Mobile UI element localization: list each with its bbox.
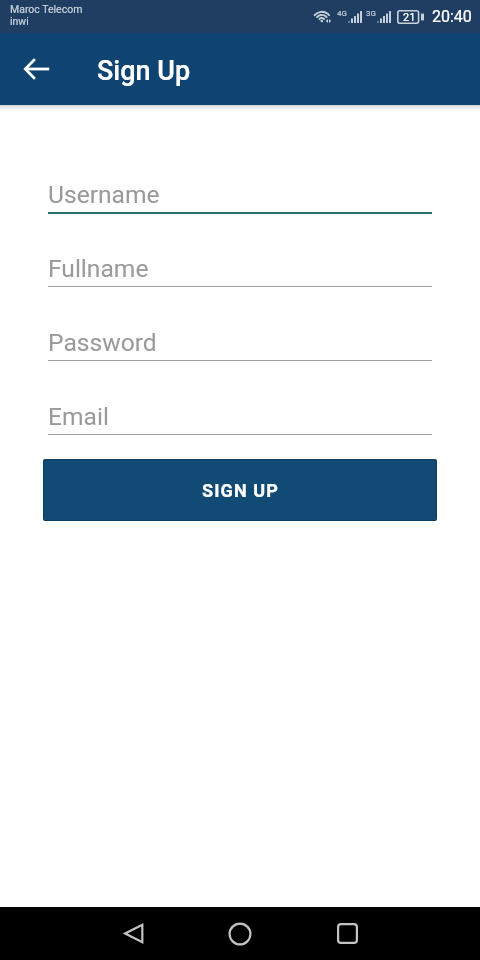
staticText: 21 [403,11,416,24]
staticText: 3G [366,9,376,18]
button[interactable]: Back [97,907,169,960]
button[interactable]: Password [48,320,432,362]
button[interactable]: Username [48,172,432,214]
staticText: 20:40 [432,7,472,26]
staticText: Fullname [48,254,149,283]
staticText: Sign Up [97,55,191,87]
button[interactable]: Recents [311,907,383,960]
staticText: inwi [10,15,29,27]
staticText: Username [48,180,160,209]
staticText: Maroc Telecom [10,3,83,15]
button[interactable]: Fullname [48,246,432,288]
staticText: Email [48,402,109,431]
staticText: 4G [337,9,347,18]
button[interactable]: SIGN UP [43,459,437,521]
staticText: Password [48,328,157,357]
button[interactable]: Home [204,907,276,960]
button[interactable]: Back [15,47,59,91]
button[interactable]: Email [48,394,432,436]
staticText: SIGN UP [202,480,279,501]
